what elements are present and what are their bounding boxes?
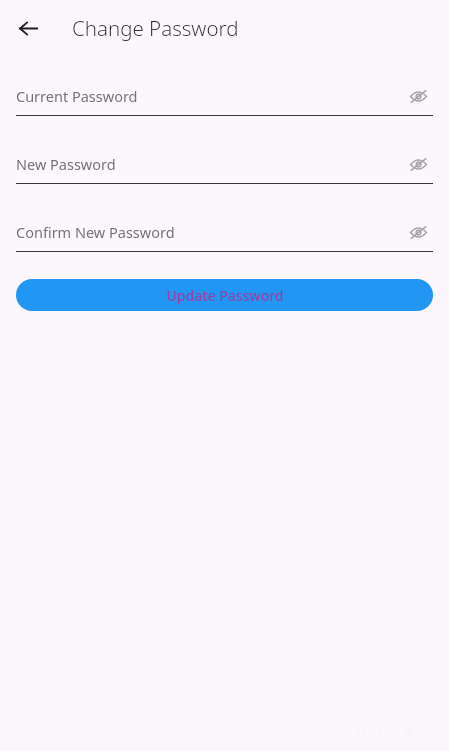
button[interactable]: Confirm New Password xyxy=(16,216,433,248)
button[interactable]: Show New Password xyxy=(403,149,433,179)
button[interactable]: Show Confirm New Password xyxy=(403,217,433,247)
button[interactable]: Update Password xyxy=(16,279,433,311)
button[interactable]: Back xyxy=(10,10,46,46)
button[interactable]: Current Password xyxy=(16,80,433,112)
staticText: Update Password xyxy=(166,286,284,305)
staticText: Change Password xyxy=(72,14,239,42)
staticText: Confirm New Password xyxy=(16,222,403,242)
button[interactable]: New Password xyxy=(16,148,433,180)
button[interactable]: Show Current Password xyxy=(403,81,433,111)
staticText: New Password xyxy=(16,154,403,174)
staticText: Current Password xyxy=(16,86,403,106)
